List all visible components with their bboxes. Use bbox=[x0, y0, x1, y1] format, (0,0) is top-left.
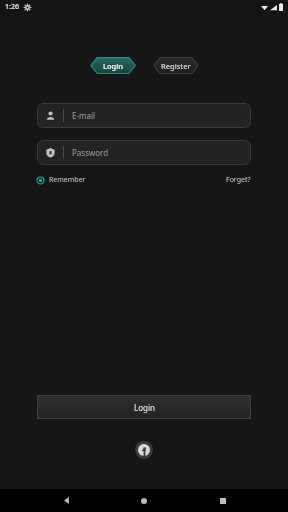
staticText: Remember bbox=[49, 175, 86, 185]
staticText: Login bbox=[134, 402, 155, 413]
button[interactable]: Register bbox=[153, 57, 199, 74]
staticText: Forget? bbox=[226, 175, 251, 185]
button[interactable]: E-mail input bbox=[37, 103, 251, 128]
button[interactable]: Recent apps bbox=[210, 489, 236, 512]
button[interactable]: Password input bbox=[37, 140, 251, 165]
button[interactable]: Home bbox=[131, 489, 157, 512]
staticText: Password bbox=[72, 147, 109, 158]
button[interactable]: Login bbox=[90, 57, 136, 74]
staticText: E-mail bbox=[72, 110, 96, 121]
staticText: 1:26 bbox=[5, 2, 19, 12]
button[interactable]: Sign in with Facebook bbox=[135, 441, 153, 459]
staticText: Register bbox=[161, 61, 191, 71]
button[interactable]: Remember bbox=[37, 175, 86, 185]
button[interactable]: Back bbox=[53, 489, 79, 512]
button[interactable]: Login bbox=[37, 395, 251, 419]
staticText: Login bbox=[103, 61, 123, 71]
button[interactable]: Forget? bbox=[226, 175, 251, 185]
